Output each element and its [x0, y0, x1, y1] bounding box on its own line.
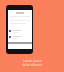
button[interactable] [8, 35, 32, 39]
staticText: Lorem ipsum [23, 59, 42, 63]
button[interactable] [8, 29, 32, 33]
staticText: dolor sit amet [22, 63, 42, 67]
